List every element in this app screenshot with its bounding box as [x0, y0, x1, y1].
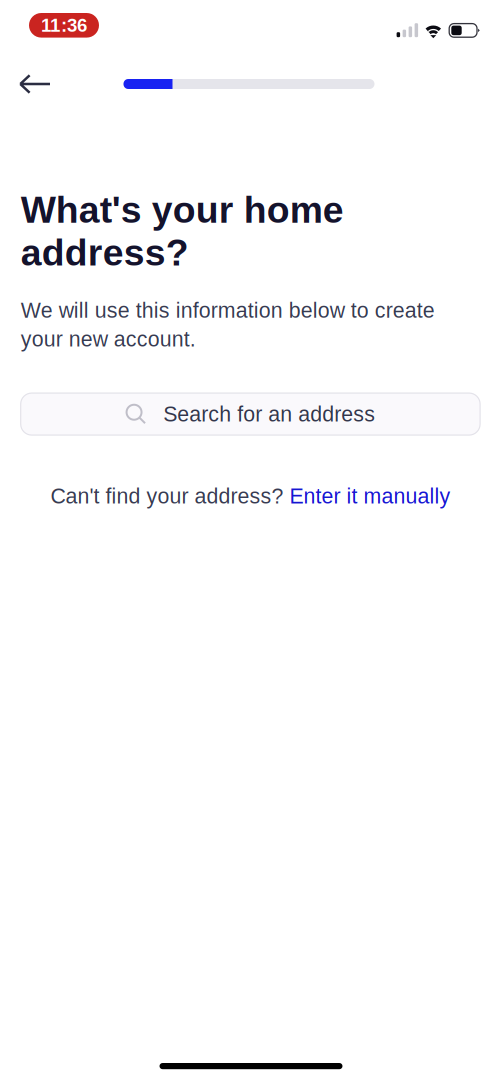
staticText: 11:36	[41, 15, 87, 36]
button[interactable]: Enter it manually	[289, 484, 450, 508]
button[interactable]: Back	[0, 50, 63, 118]
button[interactable]: Search for an address	[21, 393, 480, 435]
staticText: your new account.	[21, 327, 196, 351]
staticText: Can't find your address?	[50, 484, 289, 508]
staticText: We will use this information below to cr…	[21, 298, 435, 322]
staticText: Enter it manually	[289, 484, 450, 508]
staticText: What's your home	[21, 189, 344, 231]
staticText: Search for an address	[163, 402, 375, 426]
staticText: address?	[21, 232, 189, 273]
